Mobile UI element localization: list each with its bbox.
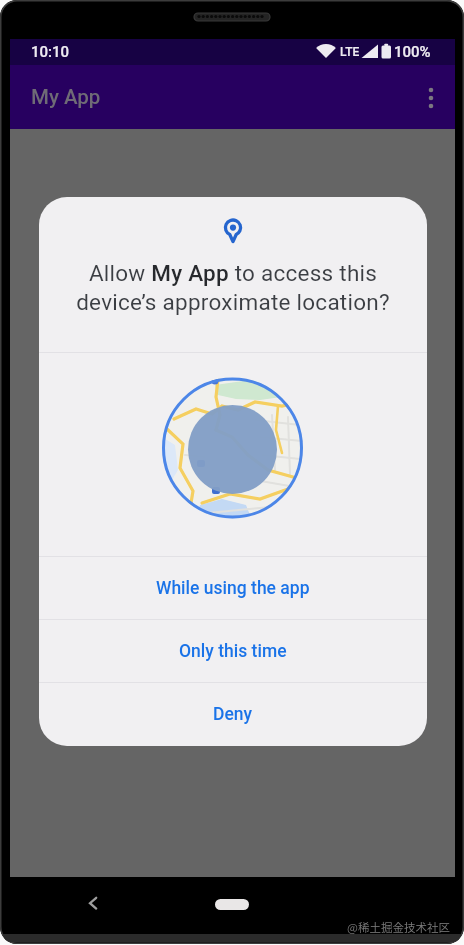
staticText: @稀土掘金技术社区 <box>347 919 450 936</box>
staticText: 100% <box>394 43 431 61</box>
button[interactable]: While using the app <box>39 557 427 619</box>
button[interactable] <box>80 894 106 914</box>
button[interactable] <box>215 899 249 910</box>
button[interactable]: Deny <box>39 683 427 746</box>
button[interactable] <box>417 84 445 112</box>
staticText: LTE <box>340 45 360 59</box>
staticText: Only this time <box>179 641 287 662</box>
button[interactable]: Only this time <box>39 620 427 682</box>
staticText: 10:10 <box>31 43 70 61</box>
staticText: Deny <box>213 704 253 725</box>
staticText: Allow My App to access this device’s app… <box>76 260 390 316</box>
staticText: My App <box>31 85 101 109</box>
staticText: While using the app <box>156 578 310 599</box>
